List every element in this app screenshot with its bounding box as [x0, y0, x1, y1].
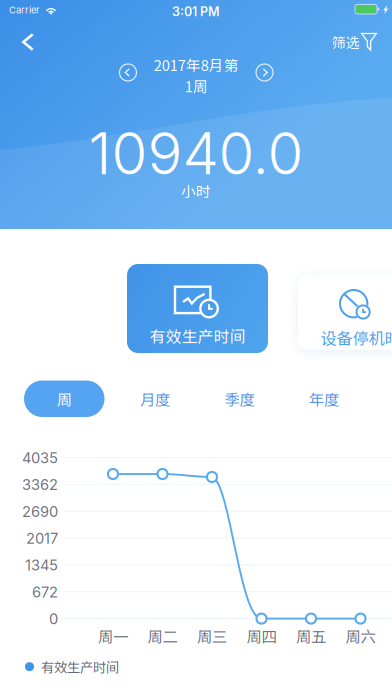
button[interactable]: 周	[24, 380, 104, 417]
staticText: 0	[49, 610, 58, 628]
button[interactable]: Previous week	[111, 55, 145, 89]
staticText: 10940.0	[88, 118, 303, 188]
staticText: 周一	[98, 625, 128, 647]
button[interactable]: Next week	[247, 55, 281, 89]
staticText: 周	[57, 388, 72, 410]
staticText: 2017	[26, 529, 58, 547]
staticText: 月度	[140, 388, 170, 410]
button[interactable]: 筛选	[307, 24, 377, 60]
button[interactable]: 月度	[119, 380, 191, 417]
staticText: 周三	[197, 625, 227, 647]
staticText: 周六	[345, 625, 375, 647]
staticText: Carrier	[9, 4, 40, 16]
staticText: 有效生产时间	[149, 324, 245, 347]
staticText: 设备停机时间	[320, 326, 392, 349]
staticText: 3:01 PM	[172, 4, 220, 19]
staticText: 周二	[147, 625, 177, 647]
staticText: 季度	[224, 388, 254, 410]
button[interactable]: 有效生产时间	[127, 264, 268, 353]
staticText: 周五	[296, 625, 326, 647]
staticText: 小时	[181, 180, 211, 201]
button[interactable]: 季度	[203, 380, 275, 417]
staticText: 有效生产时间	[41, 657, 119, 676]
staticText: 周四	[246, 625, 276, 647]
staticText: 4035	[22, 449, 58, 467]
staticText: 2690	[22, 503, 58, 520]
staticText: 3362	[22, 476, 58, 494]
button[interactable]: 设备停机时间	[298, 275, 392, 350]
staticText: 1345	[25, 556, 58, 574]
staticText: 年度	[309, 388, 339, 410]
staticText: 672	[32, 583, 58, 601]
staticText: 筛选	[332, 32, 360, 52]
staticText: 2017年8月第 1周	[153, 54, 238, 96]
button[interactable]: Back	[6, 24, 50, 60]
button[interactable]: 年度	[288, 380, 360, 417]
